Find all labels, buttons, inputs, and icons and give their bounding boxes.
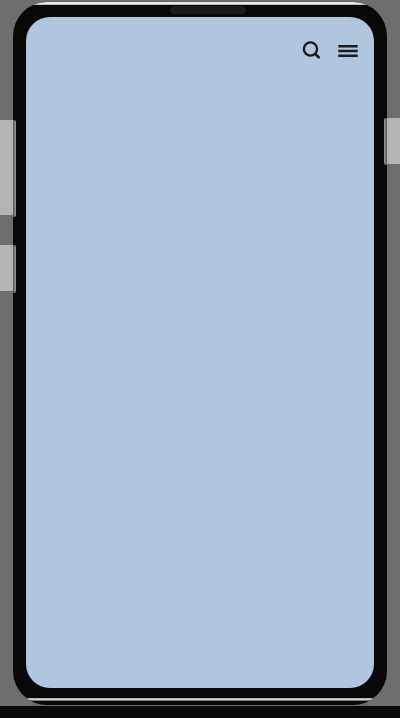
button[interactable]: Power [384, 118, 387, 165]
button[interactable]: Search [294, 33, 330, 69]
button[interactable]: Volume [13, 120, 16, 217]
button[interactable]: Menu [330, 33, 366, 69]
button[interactable]: Assistant [13, 245, 16, 293]
